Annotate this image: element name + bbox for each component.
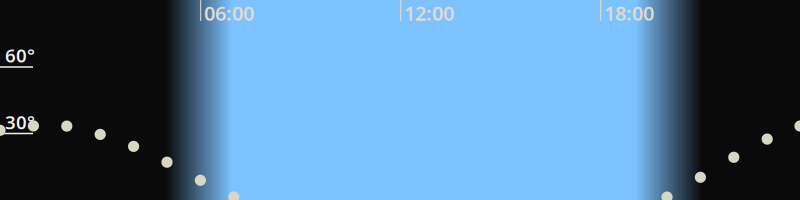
- staticText: 12:00: [404, 0, 454, 26]
- staticText: 18:00: [604, 0, 654, 26]
- staticText: 60°: [5, 43, 35, 68]
- staticText: 30°: [5, 110, 35, 134]
- staticText: 06:00: [204, 0, 254, 26]
